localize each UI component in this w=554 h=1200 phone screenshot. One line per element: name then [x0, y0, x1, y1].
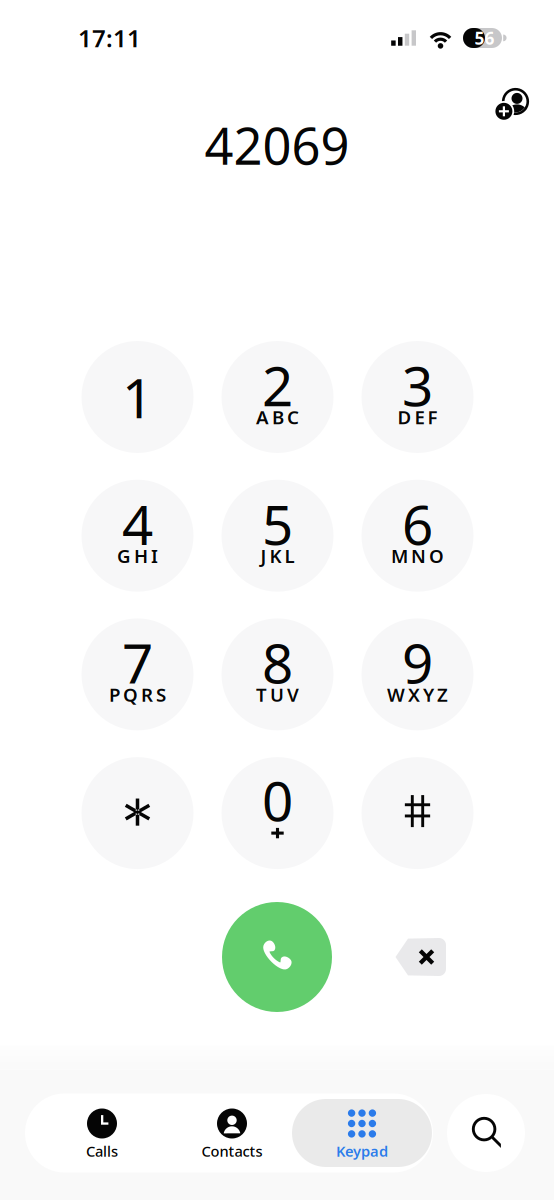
staticText: D E F: [397, 405, 437, 429]
staticText: 4: [122, 487, 153, 560]
staticText: M N O: [391, 543, 444, 568]
staticText: 5: [262, 487, 293, 560]
button[interactable]: 6: [361, 480, 473, 592]
button[interactable]: 4: [81, 480, 193, 592]
button[interactable]: 8: [221, 618, 333, 730]
staticText: 1: [122, 361, 153, 433]
staticText: Contacts: [201, 1141, 262, 1161]
staticText: A B C: [256, 405, 299, 429]
button[interactable]: Contacts: [167, 1099, 297, 1167]
button[interactable]: Search: [447, 1094, 525, 1172]
staticText: 17:11: [78, 22, 141, 54]
staticText: 9: [402, 626, 433, 699]
button[interactable]: 5: [221, 480, 333, 592]
staticText: 6: [402, 487, 433, 560]
button[interactable]: 0: [221, 757, 333, 869]
staticText: Calls: [86, 1141, 118, 1161]
staticText: 2: [262, 349, 293, 421]
button[interactable]: Star: [81, 757, 193, 869]
button[interactable]: Delete: [394, 938, 446, 976]
staticText: 56: [474, 26, 494, 49]
staticText: 0: [262, 764, 293, 836]
button[interactable]: 1: [81, 341, 193, 453]
button[interactable]: 7: [81, 618, 193, 730]
button[interactable]: Pound: [361, 757, 473, 869]
staticText: T U V: [256, 682, 299, 707]
staticText: W X Y Z: [387, 682, 448, 707]
staticText: G H I: [117, 543, 158, 568]
staticText: Keypad: [336, 1141, 388, 1161]
staticText: 7: [122, 626, 153, 699]
button[interactable]: 3: [361, 341, 473, 453]
staticText: P Q R S: [109, 682, 166, 707]
staticText: 3: [402, 349, 433, 421]
button[interactable]: Keypad: [292, 1099, 432, 1167]
button[interactable]: Calls: [37, 1099, 167, 1167]
staticText: J K L: [260, 543, 294, 568]
staticText: 42069: [204, 111, 349, 179]
button[interactable]: Add Contact: [486, 80, 538, 128]
button[interactable]: 2: [221, 341, 333, 453]
button[interactable]: Call: [222, 902, 332, 1012]
button[interactable]: 9: [361, 618, 473, 730]
staticText: 8: [262, 626, 293, 699]
